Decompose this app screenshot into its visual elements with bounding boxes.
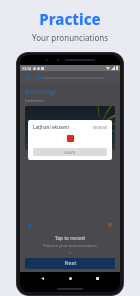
button[interactable]: Back (38, 274, 47, 283)
staticText: Your pronunciations (32, 32, 108, 43)
staticText: Practice (39, 9, 101, 29)
staticText: Tap to record (20, 235, 120, 241)
button[interactable]: Home (66, 274, 75, 283)
button[interactable]: Stop recording (67, 135, 74, 142)
staticText: Greetings (25, 87, 57, 96)
staticText: SAVE (64, 150, 76, 155)
staticText: Iziкhethelo (25, 98, 44, 103)
staticText: Next (64, 260, 77, 267)
button[interactable]: Next (25, 258, 115, 269)
staticText: Latjhani ekuseni (33, 124, 69, 130)
button[interactable]: Play (26, 221, 35, 230)
button[interactable]: Recent apps (93, 274, 102, 283)
staticText: 11:14 (22, 66, 31, 71)
button[interactable]: SAVE (33, 148, 107, 156)
button[interactable]: Speaker avatar (106, 222, 114, 230)
button[interactable]: Help (107, 73, 116, 82)
staticText: Practice your pronunciations (20, 243, 120, 248)
staticText: 00:00:00 (92, 125, 107, 130)
button[interactable]: Close (24, 73, 33, 82)
